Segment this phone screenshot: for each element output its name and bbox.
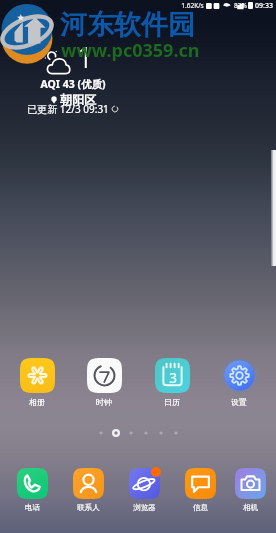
staticText: 09:33: [255, 1, 273, 11]
button[interactable]: 1: [5, 36, 141, 121]
staticText: 时钟: [96, 397, 112, 407]
staticText: 河东软件园: [60, 8, 195, 42]
staticText: 相机: [243, 503, 258, 512]
staticText: 相册: [29, 397, 45, 407]
button[interactable]: 浏览器: [116, 468, 172, 512]
button[interactable]: 联系人: [60, 468, 116, 512]
staticText: 已更新 12/3 09:31: [27, 102, 109, 116]
button[interactable]: 时钟: [76, 358, 132, 407]
button[interactable]: 设置: [211, 358, 267, 407]
staticText: 设置: [231, 397, 247, 407]
button[interactable]: 3: [144, 358, 200, 407]
staticText: AQI 43 (优质): [40, 77, 106, 91]
staticText: 浏览器: [133, 503, 156, 512]
staticText: 3: [169, 369, 177, 387]
button[interactable]: 电话: [4, 468, 60, 512]
staticText: 1: [76, 36, 94, 77]
button[interactable]: 相册: [9, 358, 65, 407]
button[interactable]: 信息: [172, 468, 228, 512]
staticText: www.pc0359.cn: [61, 38, 200, 63]
button[interactable]: 相机: [228, 468, 272, 512]
staticText: 朝阳区: [60, 92, 96, 107]
staticText: 83%: [234, 1, 247, 10]
staticText: 信息: [193, 503, 208, 512]
staticText: 1.62K/s: [181, 1, 204, 10]
staticText: 电话: [25, 503, 40, 512]
staticText: 联系人: [77, 503, 100, 512]
staticText: 日历: [164, 397, 180, 407]
